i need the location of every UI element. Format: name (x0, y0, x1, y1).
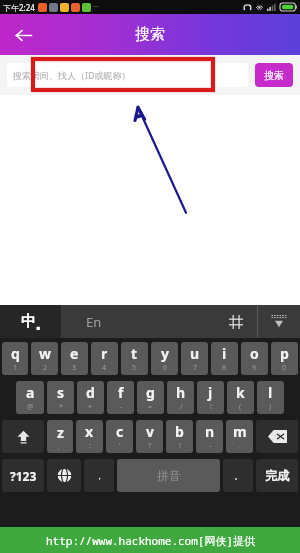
staticText: j (208, 383, 213, 402)
staticText: 3 (72, 363, 77, 373)
button[interactable]: d (77, 381, 104, 414)
button[interactable]: p (271, 342, 298, 375)
button[interactable]: Back (8, 20, 38, 50)
button[interactable]: Keyboard settings (215, 305, 257, 338)
staticText: En (86, 313, 102, 331)
staticText: n (205, 422, 215, 441)
button[interactable]: w (31, 342, 58, 375)
staticText: 中 (21, 312, 36, 331)
button[interactable]: ?123 (2, 459, 44, 492)
button[interactable]: r (91, 342, 118, 375)
button[interactable]: j (197, 381, 224, 414)
button[interactable]: 搜索 (255, 63, 293, 87)
button[interactable]: Change input language (47, 459, 81, 492)
staticText: . (239, 441, 241, 451)
staticText: 搜索 (135, 25, 165, 44)
staticText: y (161, 344, 169, 363)
button[interactable]: s (47, 381, 74, 414)
staticText: o (250, 344, 259, 363)
staticText: ' (119, 441, 121, 451)
staticText: ? (148, 441, 152, 451)
button[interactable]: 完成 (256, 459, 298, 492)
button[interactable]: b (166, 420, 193, 453)
staticText: 6 (163, 363, 168, 373)
staticText: c (116, 422, 124, 441)
staticText: f (118, 383, 124, 402)
button[interactable]: c (106, 420, 133, 453)
button[interactable]: g (137, 381, 164, 414)
staticText: ( (239, 402, 242, 412)
staticText: w (39, 344, 51, 363)
staticText: 拼音 (157, 468, 181, 483)
staticText: http://www.hackhome.com[网侠]提供 (46, 533, 255, 548)
staticText: 1 (13, 363, 18, 373)
staticText: s (57, 383, 65, 402)
staticText: k (236, 383, 245, 402)
button[interactable]: i (211, 342, 238, 375)
button[interactable]: v (136, 420, 163, 453)
button[interactable]: ， (84, 459, 114, 492)
staticText: i (222, 344, 227, 363)
staticText: m (233, 422, 247, 441)
button[interactable]: 拼音 (117, 459, 220, 492)
staticText: 搜索 (264, 69, 284, 82)
button[interactable]: a (16, 381, 44, 414)
button[interactable]: y (151, 342, 178, 375)
button[interactable]: n (196, 420, 223, 453)
button[interactable]: m (226, 420, 253, 453)
button[interactable]: h (167, 381, 194, 414)
button[interactable]: l (257, 381, 284, 414)
staticText: g (146, 383, 155, 402)
button[interactable]: 搜索房间、找人（ID或昵称） (7, 63, 248, 87)
staticText: z (57, 423, 64, 442)
staticText: a (26, 383, 35, 402)
staticText: 完成 (265, 468, 289, 483)
staticText: 下午2:24 (3, 2, 35, 13)
button[interactable]: Backspace (256, 420, 298, 453)
staticText: 5 (132, 363, 137, 373)
button[interactable]: 中 (0, 305, 61, 338)
staticText: 4 (102, 363, 107, 373)
staticText: l (268, 383, 273, 402)
staticText: * (59, 402, 63, 412)
button[interactable]: Hide keyboard (258, 305, 300, 338)
button[interactable]: En (61, 305, 215, 338)
button[interactable]: e (61, 342, 88, 375)
staticText: 0 (282, 363, 287, 373)
button[interactable]: f (107, 381, 134, 414)
button[interactable]: Shift (2, 420, 44, 453)
staticText: x (85, 422, 94, 441)
staticText: = (148, 402, 153, 412)
staticText: - (120, 402, 123, 412)
button[interactable]: 。 (223, 459, 253, 492)
button[interactable]: u (181, 342, 208, 375)
staticText: 9 (252, 363, 257, 373)
button[interactable]: x (76, 420, 103, 453)
staticText: b (175, 422, 184, 441)
staticText: 8 (222, 363, 227, 373)
staticText: 2 (43, 363, 48, 373)
staticText: ! (179, 441, 181, 451)
button[interactable]: z (47, 420, 73, 453)
button[interactable]: q (2, 342, 28, 375)
button[interactable]: k (227, 381, 254, 414)
button[interactable]: o (241, 342, 268, 375)
staticText: p (280, 344, 289, 363)
staticText: 7 (193, 363, 198, 373)
staticText: 。 (234, 470, 243, 481)
staticText: 、 (57, 442, 64, 451)
staticText: : (89, 441, 91, 451)
staticText: ) (269, 402, 272, 412)
button[interactable]: t (121, 342, 148, 375)
staticText: 搜索房间、找人（ID或昵称） (13, 69, 131, 81)
staticText: h (176, 383, 186, 402)
staticText: ?123 (10, 468, 37, 484)
staticText: @ (27, 402, 34, 412)
staticText: v (146, 422, 154, 441)
staticText: - (209, 441, 212, 451)
staticText: q (11, 344, 20, 363)
staticText: d (86, 383, 95, 402)
staticText: e (70, 344, 79, 363)
staticText: r (101, 344, 108, 363)
staticText: ! (210, 402, 212, 412)
